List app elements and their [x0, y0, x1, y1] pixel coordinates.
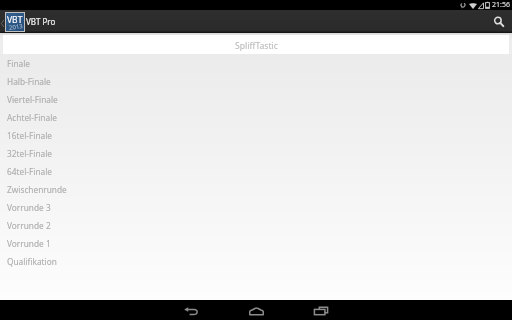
staticText: 32tel-Finale	[7, 148, 53, 159]
button[interactable]: Achtel-Finale	[0, 108, 512, 126]
staticText: 16tel-Finale	[7, 130, 53, 141]
staticText: 64tel-Finale	[7, 166, 53, 177]
staticText: Viertel-Finale	[7, 94, 58, 105]
button[interactable]: Finale	[0, 54, 512, 72]
button[interactable]: 16tel-Finale	[0, 126, 512, 144]
button[interactable]: Zwischenrunde	[0, 180, 512, 198]
staticText: SpliffTastic	[235, 40, 278, 52]
button[interactable]: 64tel-Finale	[0, 162, 512, 180]
button[interactable]: Vorrunde 3	[0, 198, 512, 216]
staticText: VBT Pro	[26, 16, 56, 27]
staticText: Achtel-Finale	[7, 112, 57, 123]
staticText: Vorrunde 2	[7, 220, 51, 231]
button[interactable]: Back	[166, 300, 216, 320]
staticText: Vorrunde 3	[7, 202, 51, 213]
button[interactable]: 32tel-Finale	[0, 144, 512, 162]
button[interactable]: SpliffTastic	[3, 35, 509, 54]
staticText: Vorrunde 1	[7, 238, 51, 249]
staticText: Zwischenrunde	[7, 184, 67, 195]
button[interactable]: Qualifikation	[0, 252, 512, 270]
button[interactable]: Viertel-Finale	[0, 90, 512, 108]
button[interactable]: Halb-Finale	[0, 72, 512, 90]
button[interactable]: Navigate up	[0, 10, 5, 33]
staticText: 2013	[8, 22, 23, 32]
button[interactable]: Search	[486, 10, 512, 33]
button[interactable]: Vorrunde 2	[0, 216, 512, 234]
button[interactable]: Vorrunde 1	[0, 234, 512, 252]
staticText: Halb-Finale	[7, 76, 51, 87]
button[interactable]: VBT Pro logo	[5, 10, 25, 33]
button[interactable]: Home	[231, 300, 281, 320]
button[interactable]: Recent apps	[296, 300, 346, 320]
staticText: Qualifikation	[7, 256, 57, 267]
staticText: VBT	[7, 14, 23, 26]
staticText: Finale	[7, 58, 31, 69]
staticText: 21:56	[492, 0, 510, 10]
